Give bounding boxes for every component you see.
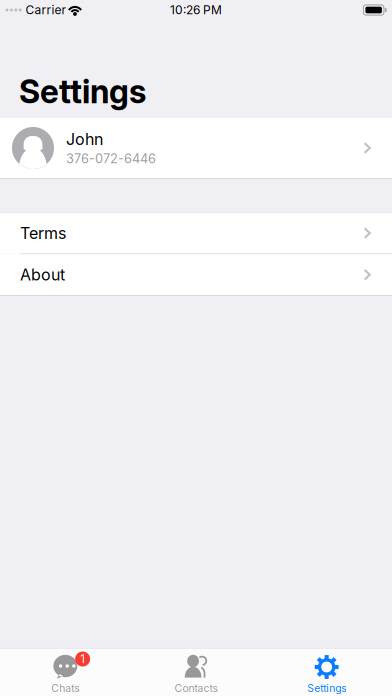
button[interactable]: Contacts (131, 648, 261, 696)
staticText: 10:26 PM (170, 3, 222, 17)
staticText: Terms (20, 223, 66, 243)
button[interactable]: About (0, 254, 392, 295)
staticText: Carrier (25, 3, 66, 17)
button[interactable]: John (0, 118, 392, 178)
staticText: Contacts (174, 682, 217, 695)
staticText: Settings (19, 72, 146, 111)
staticText: About (20, 265, 65, 284)
staticText: 1 (80, 652, 85, 666)
staticText: Settings (307, 682, 346, 695)
staticText: 376-072-6446 (66, 151, 156, 166)
button[interactable]: Terms (0, 213, 392, 254)
staticText: John (66, 130, 103, 149)
staticText: Chats (51, 682, 79, 695)
button[interactable]: Chats (0, 648, 131, 696)
button[interactable]: Settings (261, 648, 392, 696)
